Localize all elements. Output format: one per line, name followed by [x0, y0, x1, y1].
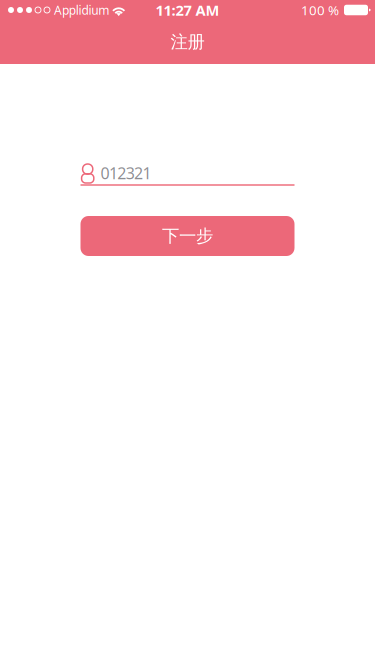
staticText: Applidium — [54, 2, 109, 18]
button[interactable]: 下一步 — [80, 216, 294, 256]
button[interactable]: 012321 — [80, 162, 294, 186]
staticText: 下一步 — [162, 225, 213, 247]
staticText: 012321 — [100, 162, 151, 184]
staticText: 注册 — [170, 31, 204, 53]
staticText: 100 % — [301, 1, 339, 19]
staticText: 11:27 AM — [155, 0, 219, 20]
